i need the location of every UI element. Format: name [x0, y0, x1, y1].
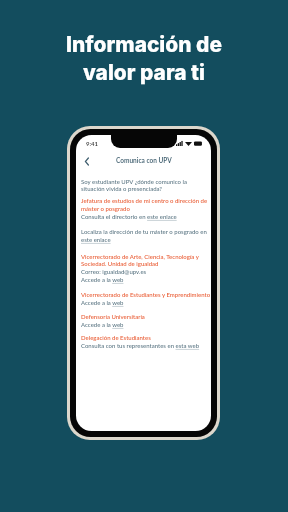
- button[interactable]: Accede a la web: [81, 299, 124, 306]
- staticText: 9:41: [86, 140, 98, 147]
- button[interactable]: Consulta el directorio en este enlace: [81, 213, 177, 220]
- button[interactable]: Accede a la web: [81, 276, 124, 283]
- button[interactable]: Consulta con tus representantes en esta …: [81, 342, 200, 349]
- staticText: situación vivida o presenciada?: [81, 185, 163, 192]
- staticText: Soy estudiante UPV ¿dónde comunico la: [81, 178, 187, 185]
- staticText: Correo: igualdad@upv.es: [81, 268, 147, 275]
- staticText: Vicerrectorado de Estudiantes y Emprendi…: [81, 291, 211, 298]
- staticText: Comunica con UPV: [116, 157, 172, 165]
- button[interactable]: Back: [80, 154, 94, 168]
- staticText: Delegación de Estudiantes: [81, 334, 151, 341]
- staticText: Vicerrectorado de Arte, Ciencia, Tecnolo…: [81, 253, 199, 260]
- staticText: Localiza la dirección de tu máster o pos…: [81, 228, 207, 235]
- button[interactable]: Accede a la web: [81, 321, 124, 328]
- staticText: Sociedad. Unidad de igualdad: [81, 260, 159, 267]
- staticText: Jefatura de estudios de mi centro o dire…: [81, 197, 208, 204]
- staticText: máster o posgrado: [81, 205, 130, 212]
- staticText: Información de valor para ti: [0, 32, 288, 85]
- staticText: Defensoría Universitaria: [81, 313, 145, 320]
- button[interactable]: este enlace: [81, 236, 111, 243]
